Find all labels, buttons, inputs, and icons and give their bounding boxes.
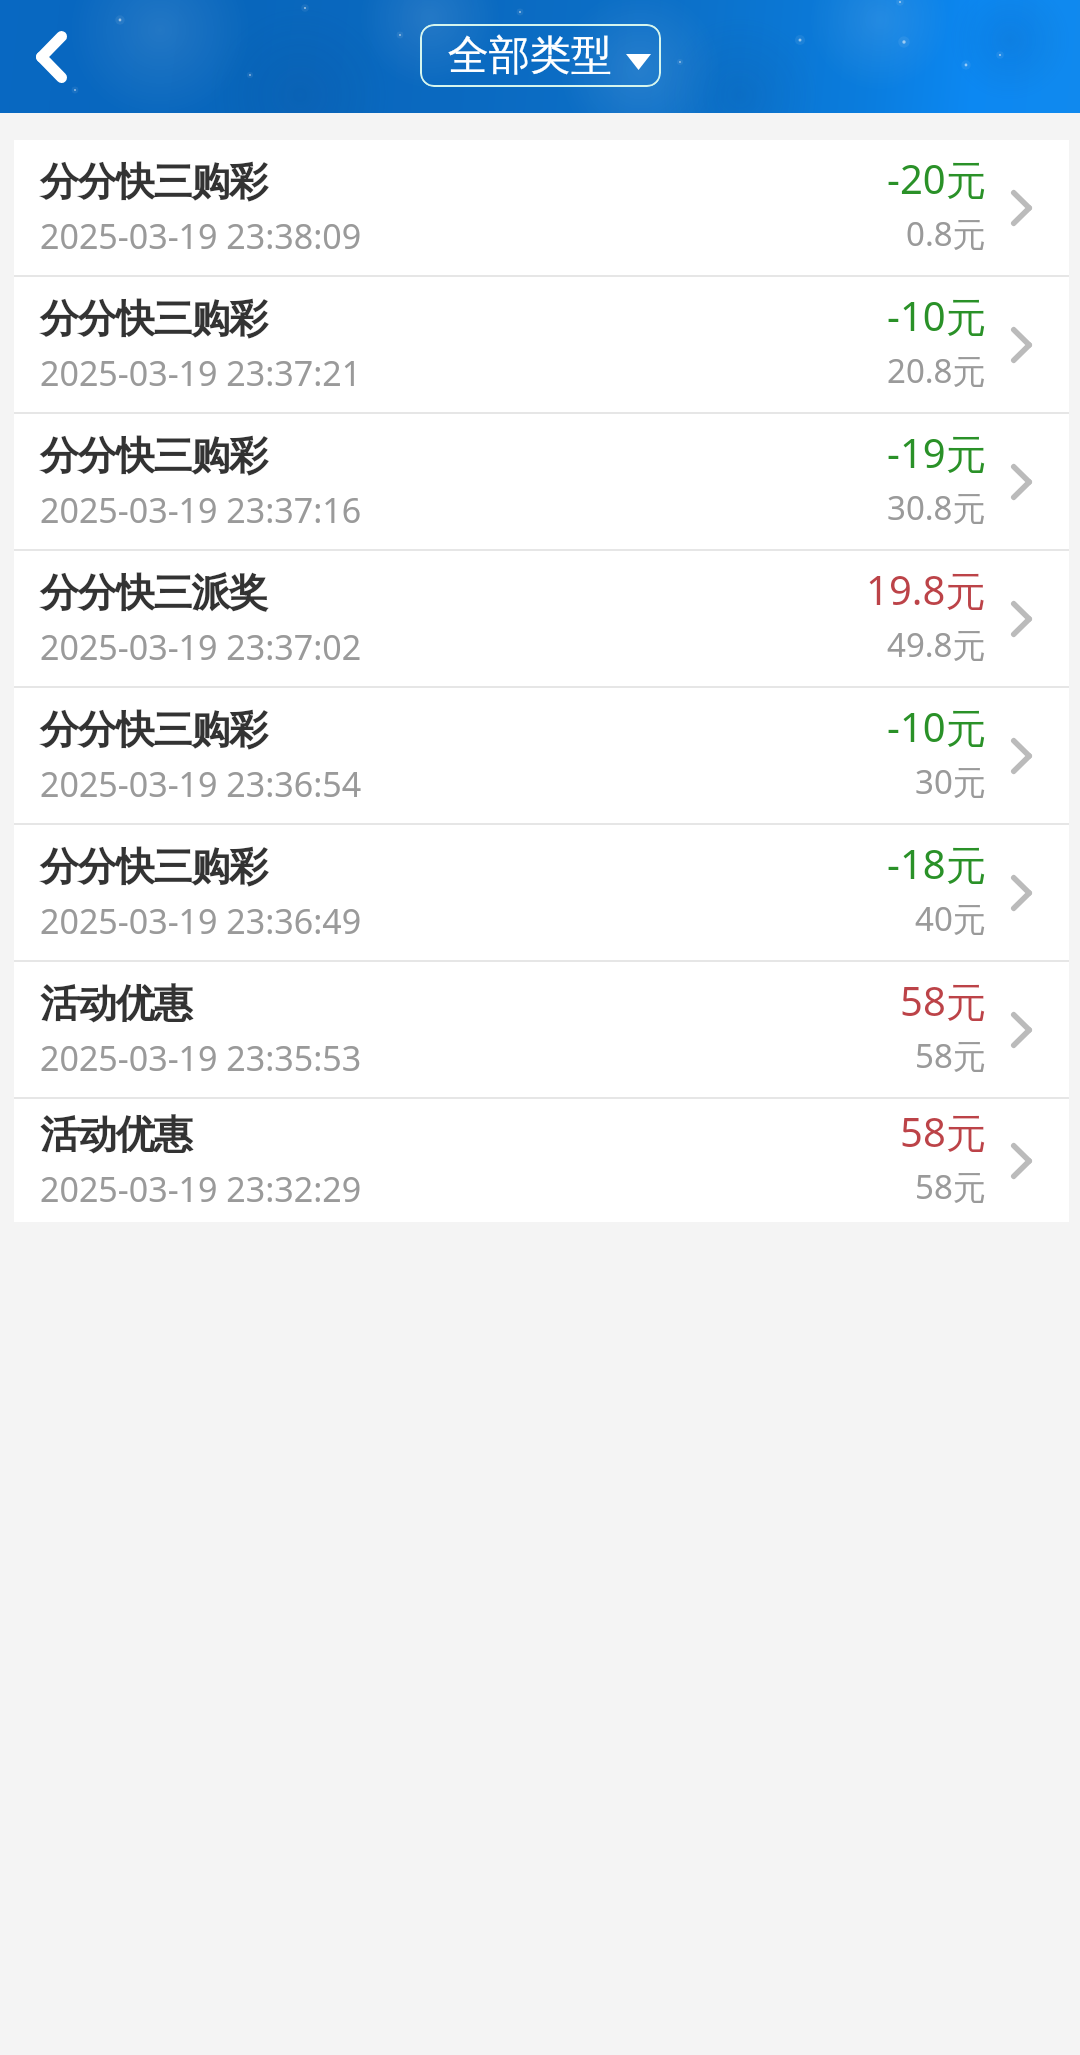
staticText: -20元 bbox=[887, 151, 986, 206]
button[interactable]: 分分快三购彩 bbox=[14, 825, 1069, 960]
staticText: 分分快三购彩 bbox=[40, 705, 267, 754]
staticText: 30.8元 bbox=[887, 485, 986, 530]
staticText: 分分快三购彩 bbox=[40, 294, 267, 343]
staticText: 2025-03-19 23:38:09 bbox=[40, 213, 362, 259]
button[interactable]: 分分快三购彩 bbox=[14, 688, 1069, 823]
staticText: 活动优惠 bbox=[40, 979, 192, 1028]
staticText: -10元 bbox=[887, 288, 986, 343]
staticText: 2025-03-19 23:36:49 bbox=[40, 898, 362, 944]
staticText: 0.8元 bbox=[906, 211, 986, 256]
staticText: 分分快三购彩 bbox=[40, 842, 267, 891]
staticText: 2025-03-19 23:36:54 bbox=[40, 761, 362, 807]
button[interactable]: 分分快三派奖 bbox=[14, 551, 1069, 686]
button[interactable]: 分分快三购彩 bbox=[14, 414, 1069, 549]
staticText: 58元 bbox=[900, 973, 986, 1028]
staticText: 2025-03-19 23:37:16 bbox=[40, 487, 362, 533]
staticText: 20.8元 bbox=[887, 348, 986, 393]
staticText: 2025-03-19 23:32:29 bbox=[40, 1166, 362, 1212]
button[interactable]: 全部类型 bbox=[420, 24, 661, 87]
staticText: -19元 bbox=[887, 425, 986, 480]
staticText: 全部类型 bbox=[448, 30, 612, 82]
staticText: 58元 bbox=[915, 1033, 986, 1078]
staticText: 2025-03-19 23:35:53 bbox=[40, 1035, 362, 1081]
staticText: 30元 bbox=[915, 759, 986, 804]
staticText: -18元 bbox=[887, 836, 986, 891]
staticText: 分分快三派奖 bbox=[40, 568, 267, 617]
staticText: 活动优惠 bbox=[40, 1110, 192, 1159]
staticText: -10元 bbox=[887, 699, 986, 754]
staticText: 49.8元 bbox=[887, 622, 986, 667]
staticText: 58元 bbox=[915, 1164, 986, 1209]
staticText: 58元 bbox=[900, 1104, 986, 1159]
button[interactable]: 活动优惠 bbox=[14, 1099, 1069, 1222]
button[interactable]: 分分快三购彩 bbox=[14, 277, 1069, 412]
button[interactable]: 分分快三购彩 bbox=[14, 140, 1069, 275]
button[interactable]: 活动优惠 bbox=[14, 962, 1069, 1097]
staticText: 2025-03-19 23:37:02 bbox=[40, 624, 362, 670]
staticText: 2025-03-19 23:37:21 bbox=[40, 350, 362, 396]
button[interactable]: Back bbox=[8, 0, 94, 113]
staticText: 40元 bbox=[915, 896, 986, 941]
staticText: 分分快三购彩 bbox=[40, 431, 267, 480]
staticText: 分分快三购彩 bbox=[40, 157, 267, 206]
staticText: 19.8元 bbox=[866, 562, 986, 617]
